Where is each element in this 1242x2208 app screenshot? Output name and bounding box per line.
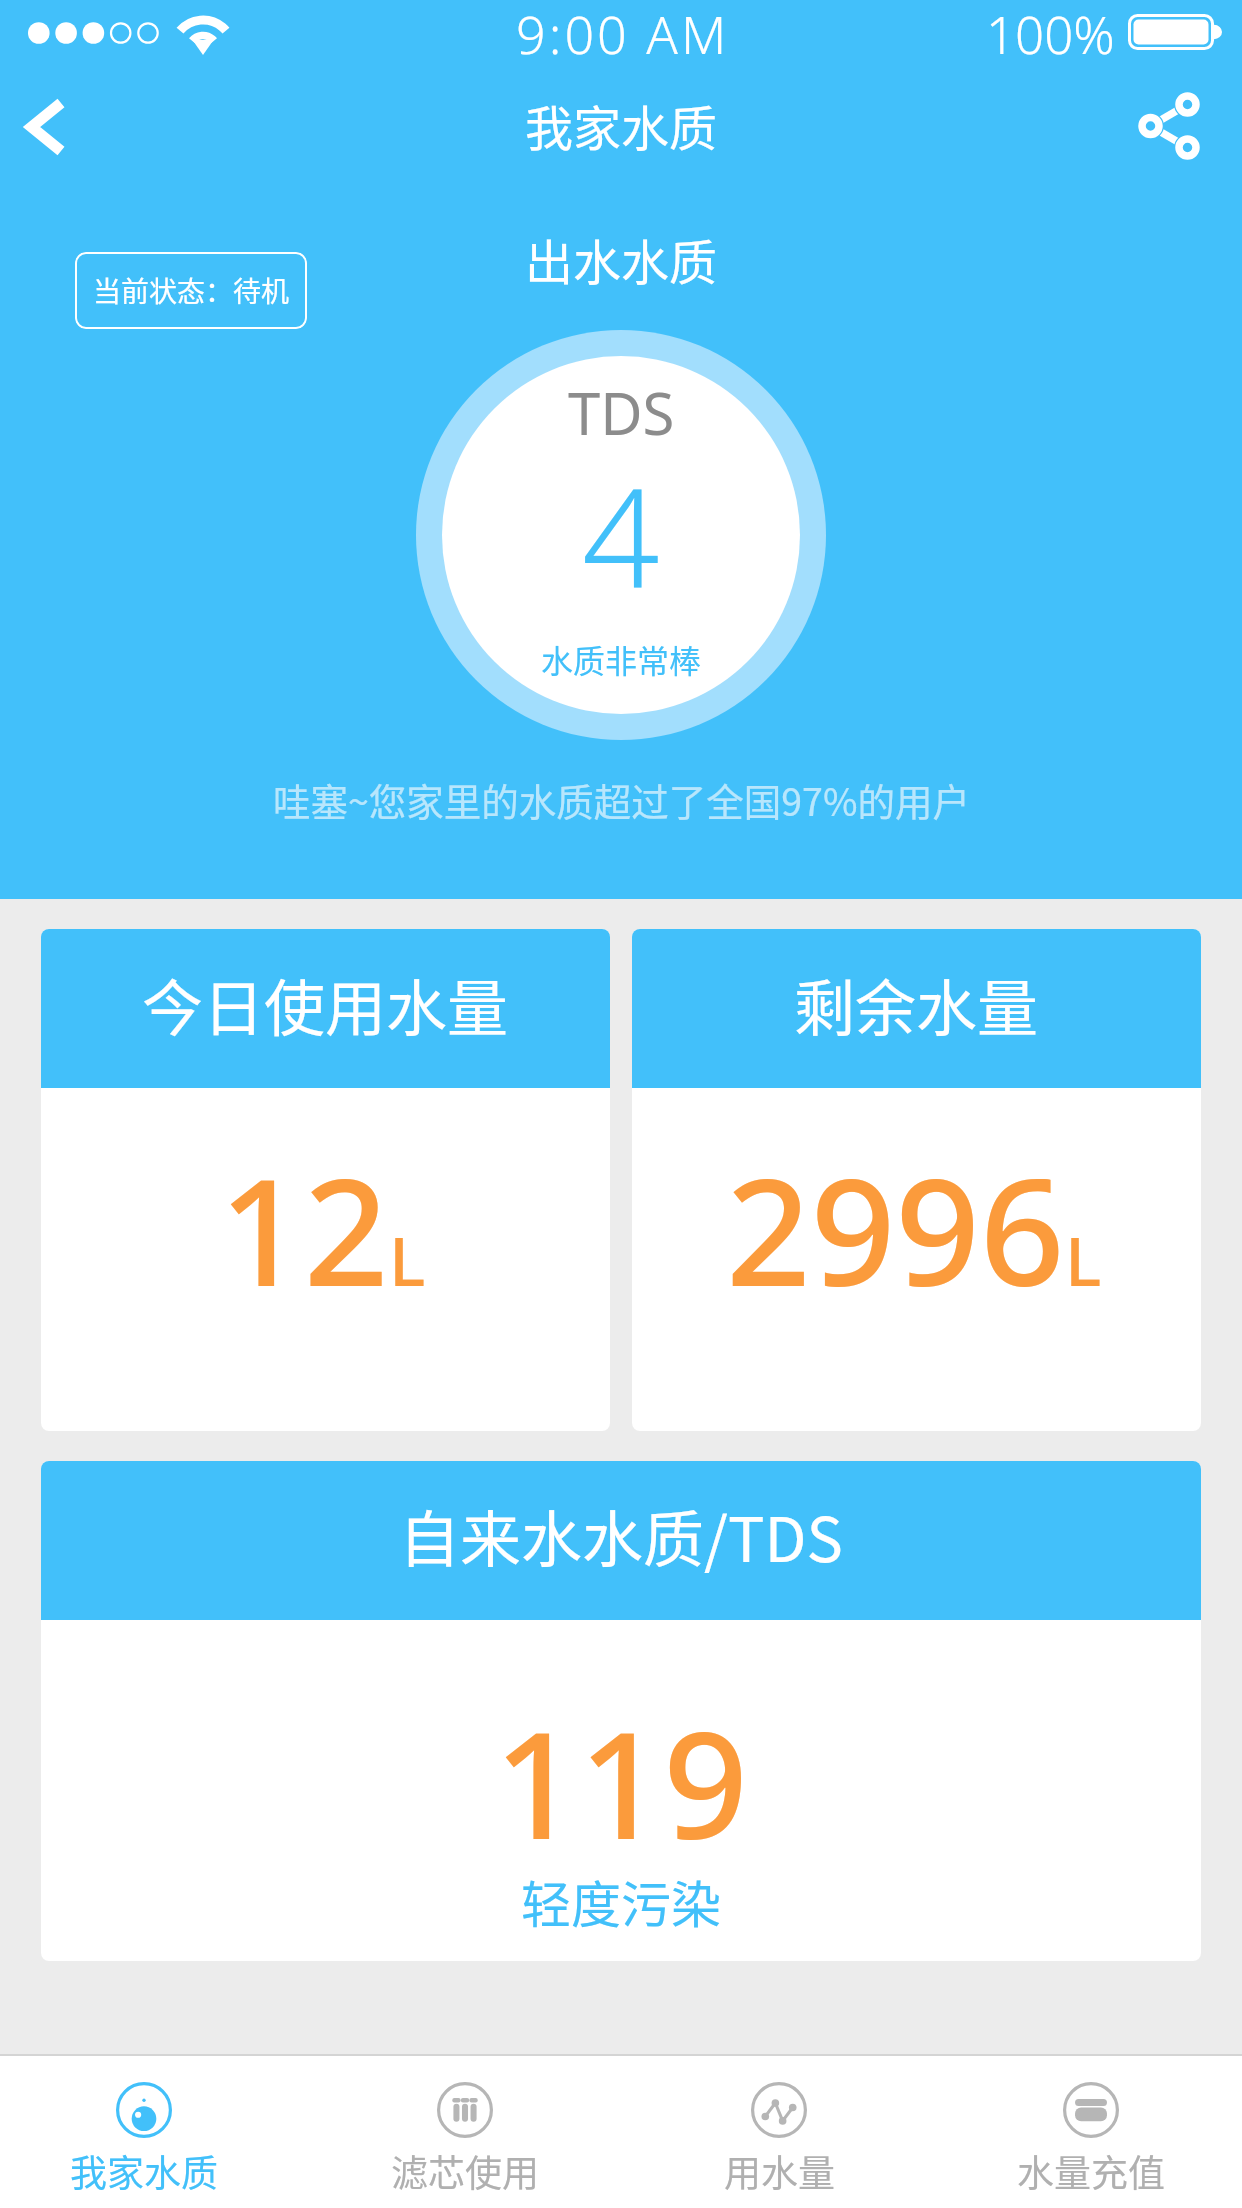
staticText: L xyxy=(1065,1213,1102,1306)
staticText: 2996 xyxy=(726,1128,1065,1330)
staticText: 水质非常棒 xyxy=(541,636,702,682)
staticText: 今日使用水量 xyxy=(142,960,509,1048)
button[interactable]: Share xyxy=(1112,62,1242,187)
staticText: 滤芯使用 xyxy=(391,2144,539,2198)
button[interactable]: 我家水质 xyxy=(0,2056,294,2208)
staticText: 水量充值 xyxy=(1017,2144,1165,2198)
staticText: 轻度污染 xyxy=(521,1865,721,1937)
staticText: 我家水质 xyxy=(70,2144,218,2198)
staticText: 哇塞~您家里的水质超过了全国97%的用户 xyxy=(273,772,970,826)
staticText: 119 xyxy=(494,1681,748,1883)
staticText: 100% xyxy=(986,0,1115,61)
staticText: TDS xyxy=(568,373,675,452)
button[interactable]: Back xyxy=(0,62,130,187)
staticText: 当前状态：待机 xyxy=(93,270,290,311)
button[interactable]: 用水量 xyxy=(629,2056,929,2208)
button[interactable]: 滤芯使用 xyxy=(315,2056,615,2208)
staticText: 9:00 AM xyxy=(516,0,730,60)
staticText: 12 xyxy=(219,1128,389,1330)
staticText: L xyxy=(389,1213,426,1306)
button[interactable]: 剩余水量 xyxy=(632,929,1201,1431)
staticText: 4 xyxy=(582,442,660,627)
button[interactable]: 今日使用水量 xyxy=(41,929,610,1431)
button[interactable]: 水量充值 xyxy=(941,2056,1241,2208)
staticText: 用水量 xyxy=(724,2144,835,2198)
staticText: 出水水质 xyxy=(525,224,718,294)
staticText: 我家水质 xyxy=(525,90,718,160)
staticText: 自来水水质/TDS xyxy=(399,1491,843,1579)
staticText: 剩余水量 xyxy=(794,960,1039,1048)
button[interactable]: 当前状态：待机 xyxy=(75,252,307,329)
button[interactable]: 自来水水质/TDS xyxy=(41,1461,1201,1961)
